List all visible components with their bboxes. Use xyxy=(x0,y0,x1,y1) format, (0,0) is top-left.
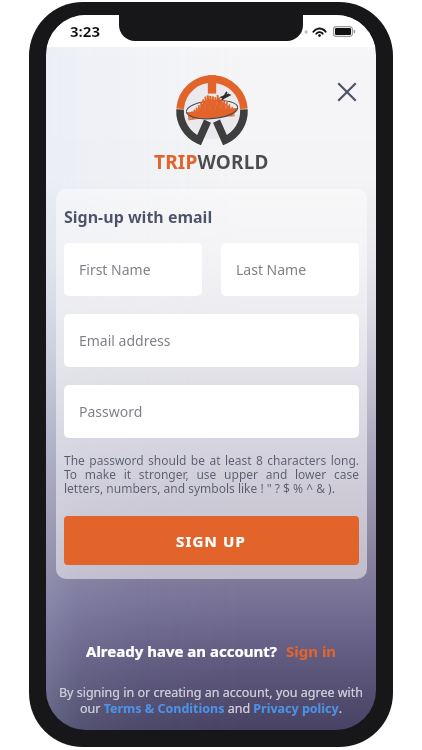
button[interactable]: Close xyxy=(328,73,366,111)
button[interactable]: Password xyxy=(64,385,359,438)
staticText: SIGN UP xyxy=(176,531,247,551)
button[interactable]: Already have an account? xyxy=(80,637,343,665)
staticText: First Name xyxy=(79,260,151,279)
button[interactable]: First Name xyxy=(64,243,202,296)
staticText: Password xyxy=(79,402,143,421)
button[interactable]: Last Name xyxy=(221,243,359,296)
staticText: The password should be at least 8 charac… xyxy=(64,452,359,496)
staticText: Last Name xyxy=(236,260,307,279)
button[interactable]: Email address xyxy=(64,314,359,367)
staticText: Already have an account? xyxy=(86,641,277,661)
staticText: TRIPWORLD xyxy=(154,149,269,175)
button[interactable]: SIGN UP xyxy=(64,516,359,565)
staticText: 3:23 xyxy=(70,21,100,41)
staticText: By signing in or creating an account, yo… xyxy=(54,684,368,716)
staticText: Sign-up with email xyxy=(64,206,213,228)
staticText: Email address xyxy=(79,331,171,350)
staticText: Sign in xyxy=(286,641,337,661)
